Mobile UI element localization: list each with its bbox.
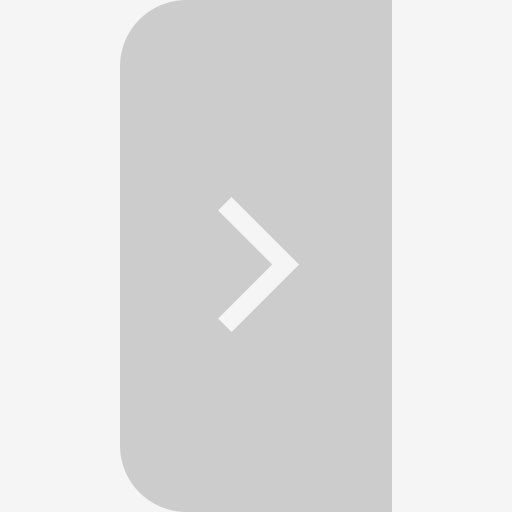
button[interactable]: Next — [120, 0, 392, 512]
